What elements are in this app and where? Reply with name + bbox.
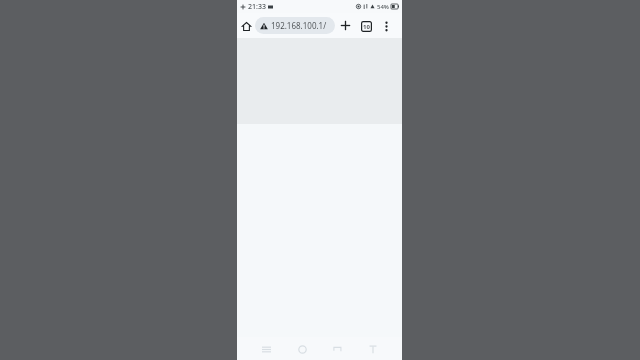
staticText: 21:33: [248, 2, 266, 12]
staticText: 54%: [377, 3, 389, 11]
button[interactable]: Hide keyboard: [363, 339, 383, 359]
button[interactable]: More options: [376, 16, 396, 36]
button[interactable]: Switch tabs: [356, 16, 376, 36]
button[interactable]: Home: [237, 17, 255, 35]
button[interactable]: Recent apps: [256, 339, 276, 359]
staticText: 10: [363, 23, 370, 31]
button[interactable]: New tab: [335, 15, 356, 36]
button[interactable]: Home: [292, 339, 312, 359]
staticText: 192.168.100.1/in: [271, 20, 331, 31]
button[interactable]: Back: [327, 339, 347, 359]
button[interactable]: 192.168.100.1/in: [255, 17, 335, 34]
